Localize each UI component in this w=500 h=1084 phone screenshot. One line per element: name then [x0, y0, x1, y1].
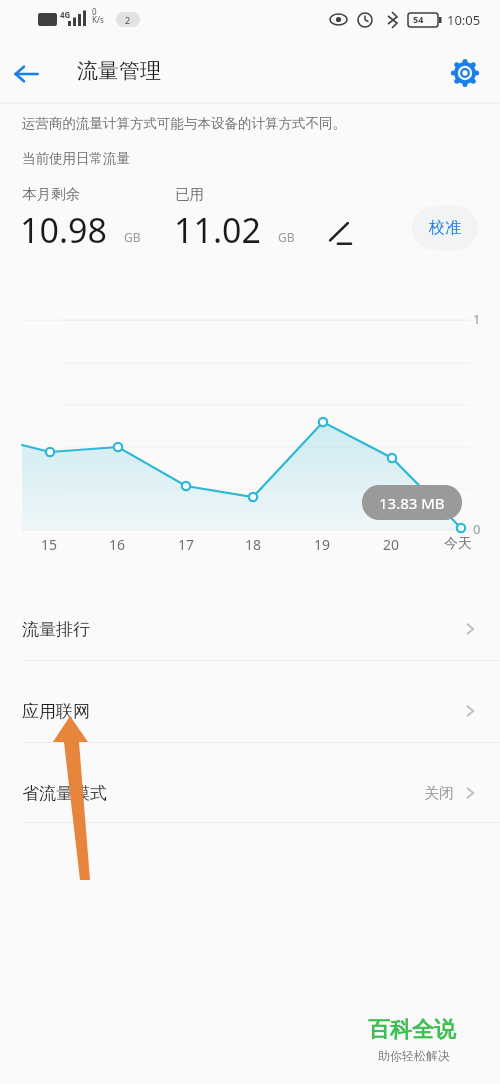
staticText: 10:05	[447, 11, 481, 29]
staticText: 20	[383, 535, 400, 554]
staticText: 助你轻松解决	[378, 1048, 450, 1063]
staticText: 应用联网	[22, 701, 90, 722]
button[interactable]: 校准	[412, 206, 478, 250]
button[interactable]: Settings	[440, 48, 490, 98]
staticText: 4G	[60, 9, 71, 20]
staticText: 2	[125, 14, 131, 26]
staticText: 校准	[429, 218, 461, 238]
staticText: 省流量模式	[22, 783, 107, 804]
staticText: 54	[413, 13, 424, 25]
button[interactable]: Edit	[318, 210, 362, 254]
staticText: 流量排行	[22, 619, 90, 640]
button[interactable]: 应用联网	[0, 680, 500, 742]
staticText: 19	[314, 535, 331, 554]
staticText: 1	[473, 310, 481, 328]
staticText: 0	[473, 520, 481, 538]
staticText: GB	[124, 229, 141, 245]
staticText: GB	[278, 229, 295, 245]
staticText: 11.02	[174, 207, 261, 253]
staticText: 15	[41, 535, 58, 554]
staticText: 流量管理	[77, 58, 161, 84]
staticText: 关闭	[424, 784, 454, 803]
staticText: 13.83 MB	[379, 493, 445, 513]
staticText: 0 K/s	[92, 6, 104, 25]
staticText: 16	[109, 535, 126, 554]
staticText: 18	[245, 535, 262, 554]
button[interactable]: 流量排行	[0, 598, 500, 660]
staticText: 10.98	[20, 207, 107, 253]
staticText: 当前使用日常流量	[22, 150, 130, 167]
staticText: 17	[178, 535, 195, 554]
staticText: 已用	[175, 185, 204, 203]
staticText: 今天	[444, 535, 472, 553]
button[interactable]: Back	[0, 48, 52, 100]
button[interactable]: 省流量模式	[0, 762, 500, 824]
staticText: 本月剩余	[22, 185, 80, 203]
staticText: 百科全说	[368, 1016, 456, 1044]
staticText: 运营商的流量计算方式可能与本设备的计算方式不同。	[22, 115, 346, 132]
